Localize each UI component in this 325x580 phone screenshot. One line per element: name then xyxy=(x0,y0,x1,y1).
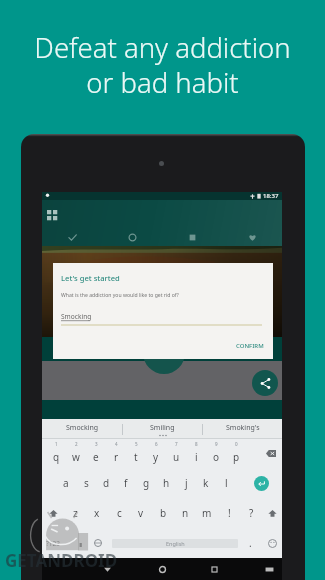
button[interactable]: 8 xyxy=(186,439,206,468)
button[interactable]: Dashboard xyxy=(47,210,59,222)
button[interactable]: Back xyxy=(97,559,117,579)
button[interactable]: 0 xyxy=(226,439,246,468)
button[interactable]: ! xyxy=(218,498,240,528)
button[interactable]: Shift xyxy=(262,498,282,528)
staticText: w xyxy=(72,450,80,464)
staticText: s xyxy=(84,476,89,490)
staticText: 18:37 xyxy=(263,192,279,200)
button[interactable]: n xyxy=(174,498,196,528)
staticText: English xyxy=(166,540,185,547)
staticText: . xyxy=(249,536,252,550)
staticText: y xyxy=(153,450,159,464)
button[interactable]: l xyxy=(216,468,236,498)
staticText: n xyxy=(182,506,189,520)
staticText: t xyxy=(134,450,138,464)
button[interactable]: CONFIRM xyxy=(233,339,267,353)
button[interactable]: m xyxy=(196,498,218,528)
staticText: f xyxy=(124,476,128,490)
staticText: o xyxy=(213,450,220,464)
button[interactable]: x xyxy=(86,498,108,528)
staticText: Let's get started xyxy=(61,273,120,283)
button[interactable]: Tab xyxy=(162,228,222,246)
staticText: 0 xyxy=(235,441,238,447)
staticText: g xyxy=(143,476,150,490)
staticText: m xyxy=(202,506,212,520)
button[interactable]: ? xyxy=(240,498,262,528)
staticText: v xyxy=(138,506,144,520)
staticText: a xyxy=(63,476,69,490)
button[interactable]: Emoji xyxy=(262,528,282,558)
button[interactable]: Smoking's xyxy=(203,419,282,439)
staticText: k xyxy=(203,476,209,490)
staticText: u xyxy=(173,450,180,464)
staticText: GETANDROID xyxy=(5,549,118,572)
staticText: Smiling xyxy=(150,423,175,433)
button[interactable]: g xyxy=(136,468,156,498)
button[interactable]: 4 xyxy=(106,439,126,468)
staticText: ? xyxy=(249,506,254,520)
button[interactable]: z xyxy=(64,498,86,528)
button[interactable]: . xyxy=(238,528,262,558)
button[interactable]: 3 xyxy=(86,439,106,468)
button[interactable]: Keyboard xyxy=(259,559,279,579)
staticText: q xyxy=(53,450,60,464)
button[interactable]: Tab xyxy=(42,228,102,246)
staticText: Smoking's xyxy=(226,423,260,433)
button[interactable]: Change language xyxy=(84,528,112,558)
staticText: 9 xyxy=(215,441,218,447)
button[interactable]: Smiling xyxy=(123,419,202,439)
button[interactable]: f xyxy=(116,468,136,498)
staticText: Defeat any addiction or bad habit xyxy=(34,29,291,101)
staticText: d xyxy=(103,476,110,490)
staticText: Smocking xyxy=(61,312,92,321)
staticText: 3 xyxy=(95,441,98,447)
button[interactable]: Share xyxy=(252,370,278,396)
button[interactable]: English xyxy=(112,539,238,548)
staticText: ! xyxy=(228,506,231,520)
button[interactable]: 9 xyxy=(206,439,226,468)
button[interactable]: b xyxy=(152,498,174,528)
staticText: j xyxy=(185,476,188,490)
button[interactable]: Tab xyxy=(102,228,162,246)
button[interactable]: 6 xyxy=(146,439,166,468)
button[interactable]: k xyxy=(196,468,216,498)
staticText: What is the addiction you would like to … xyxy=(61,292,179,299)
staticText: Smocking xyxy=(66,423,99,433)
staticText: 6 xyxy=(155,441,158,447)
staticText: i xyxy=(195,450,198,464)
button[interactable]: d xyxy=(96,468,116,498)
button[interactable]: Tab xyxy=(222,228,282,246)
button[interactable]: 5 xyxy=(126,439,146,468)
button[interactable]: ?123 xyxy=(42,528,64,558)
staticText: r xyxy=(114,450,119,464)
staticText: ?123 xyxy=(46,539,60,548)
staticText: 8 xyxy=(195,441,198,447)
staticText: 4 xyxy=(115,441,118,447)
button[interactable]: Smocking xyxy=(42,419,122,439)
staticText: z xyxy=(73,506,78,520)
staticText: 7 xyxy=(175,441,178,447)
staticText: c xyxy=(117,506,122,520)
staticText: x xyxy=(94,506,100,520)
button[interactable]: Recents xyxy=(204,559,224,579)
button[interactable]: j xyxy=(176,468,196,498)
button[interactable]: Home xyxy=(152,559,172,579)
button[interactable]: 7 xyxy=(166,439,186,468)
staticText: DAYS SO FAR xyxy=(154,347,174,360)
staticText: 1 xyxy=(55,441,58,447)
button[interactable]: h xyxy=(156,468,176,498)
button[interactable]: Enter xyxy=(236,468,282,498)
button[interactable]: s xyxy=(76,468,96,498)
button[interactable]: 2 xyxy=(66,439,86,468)
button[interactable]: Delete xyxy=(246,439,282,468)
button[interactable]: 1 xyxy=(46,439,66,468)
staticText: CONFIRM xyxy=(236,342,264,350)
staticText: h xyxy=(163,476,170,490)
staticText: b xyxy=(160,506,167,520)
button[interactable]: v xyxy=(130,498,152,528)
button[interactable]: a xyxy=(56,468,76,498)
button[interactable]: Shift xyxy=(42,498,64,528)
staticText: 2 xyxy=(75,441,78,447)
button[interactable]: c xyxy=(108,498,130,528)
staticText: p xyxy=(233,450,240,464)
